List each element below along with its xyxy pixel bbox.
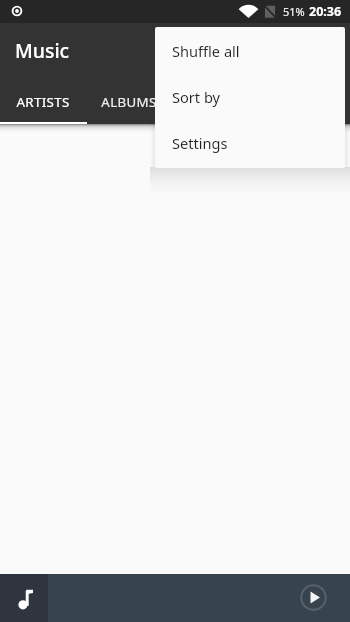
button[interactable]: ALBUMS xyxy=(86,79,172,124)
button[interactable]: SONGS xyxy=(172,79,258,124)
button[interactable]: Play xyxy=(300,584,327,611)
staticText: 51% xyxy=(283,4,305,19)
staticText: 20:36 xyxy=(309,3,342,20)
staticText: ALBUMS xyxy=(101,93,157,111)
staticText: SONGS xyxy=(192,93,239,111)
button[interactable]: Settings xyxy=(155,120,345,166)
button[interactable]: ARTISTS xyxy=(0,79,86,124)
button[interactable]: Sort by xyxy=(155,74,345,120)
staticText: Music xyxy=(15,37,70,63)
button[interactable]: Album art xyxy=(0,574,48,622)
staticText: ARTISTS xyxy=(16,93,70,111)
staticText: Settings xyxy=(172,133,228,153)
staticText: Shuffle all xyxy=(172,41,240,61)
staticText: Sort by xyxy=(172,87,221,107)
button[interactable]: Shuffle all xyxy=(155,28,345,74)
